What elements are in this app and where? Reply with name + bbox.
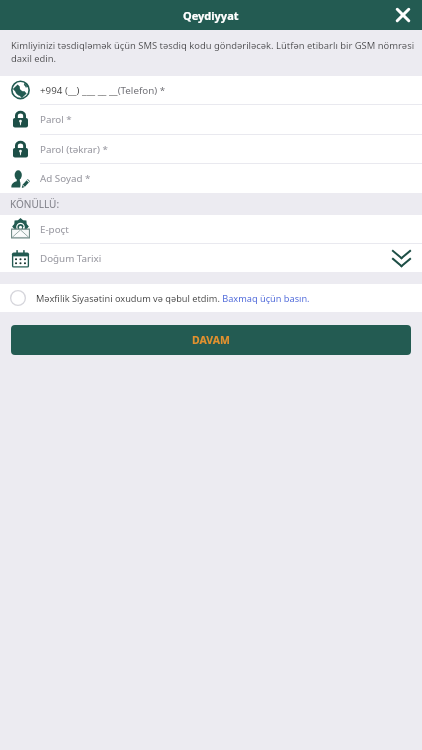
button[interactable]: Parol (təkrar) *: [0, 135, 422, 164]
button[interactable]: Close: [390, 2, 416, 28]
button[interactable]: DAVAM: [11, 325, 411, 355]
staticText: KÖNÜLLÜ:: [10, 197, 60, 211]
staticText: Parol (təkrar) *: [40, 143, 108, 156]
staticText: Məxfilik Siyasətini oxudum və qəbul etdi…: [36, 292, 310, 305]
button[interactable]: Expand: [380, 244, 422, 272]
staticText: Doğum Tarixi: [40, 252, 102, 265]
staticText: E-poçt: [40, 223, 69, 236]
button[interactable]: Parol *: [0, 105, 422, 135]
button[interactable]: +994 (__) ___ __ __(Telefon) *: [0, 76, 422, 105]
button[interactable]: Məxfilik Siyasətini oxudum və qəbul etdi…: [0, 284, 422, 312]
button[interactable]: Ad Soyad *: [0, 164, 422, 193]
button[interactable]: Doğum Tarixi: [0, 244, 422, 272]
button[interactable]: E-poçt: [0, 215, 422, 244]
staticText: Ad Soyad *: [40, 172, 91, 185]
staticText: +994 (__) ___ __ __(Telefon) *: [40, 84, 166, 97]
staticText: DAVAM: [192, 333, 230, 347]
staticText: Parol *: [40, 113, 72, 126]
staticText: Qeydiyyat: [183, 8, 239, 23]
staticText: Kimliyinizi təsdiqləmək üçün SMS təsdiq …: [11, 39, 418, 65]
